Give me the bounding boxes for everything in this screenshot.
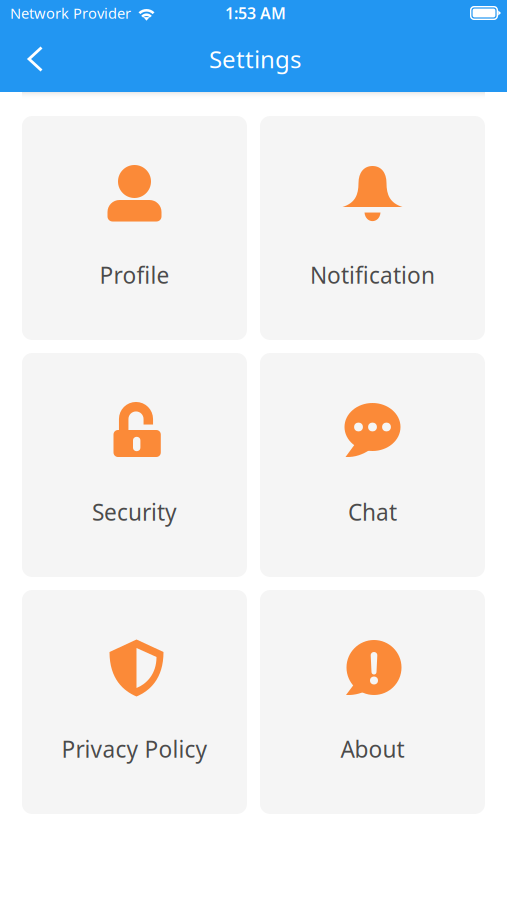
- staticText: Chat: [348, 497, 397, 527]
- button[interactable]: About: [260, 590, 485, 814]
- staticText: Settings: [209, 43, 301, 75]
- button[interactable]: Chat: [260, 353, 485, 577]
- button[interactable]: Privacy Policy: [22, 590, 247, 814]
- staticText: Security: [92, 497, 177, 527]
- button[interactable]: Profile: [22, 116, 247, 340]
- staticText: About: [340, 734, 404, 764]
- staticText: Network Provider: [10, 3, 131, 23]
- staticText: 1:53 AM: [225, 2, 286, 24]
- staticText: Privacy Policy: [61, 734, 207, 764]
- button[interactable]: Security: [22, 353, 247, 577]
- button[interactable]: Notification: [260, 116, 485, 340]
- staticText: Profile: [99, 260, 169, 290]
- staticText: Notification: [310, 260, 435, 290]
- button[interactable]: Back: [11, 33, 59, 85]
